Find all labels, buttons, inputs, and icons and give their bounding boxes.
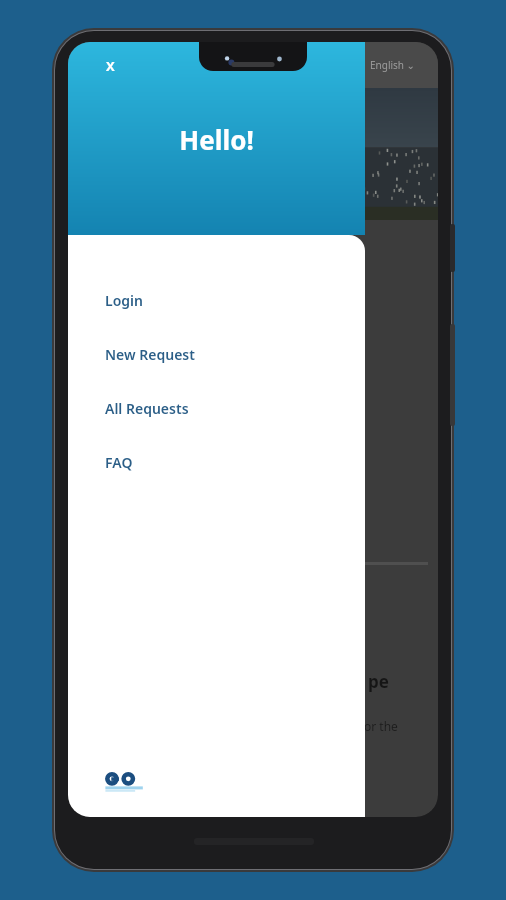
staticText: X (106, 57, 115, 75)
button[interactable]: FAQ (68, 435, 365, 489)
button[interactable]: GO logo (104, 771, 152, 797)
staticText: or the (364, 718, 398, 734)
staticText: Login (105, 291, 143, 310)
staticText: English ⌄ (370, 58, 415, 72)
staticText: All Requests (105, 399, 189, 418)
button[interactable]: Close menu (98, 54, 122, 78)
button[interactable]: Login (68, 273, 365, 327)
staticText: New Request (105, 345, 195, 364)
button[interactable]: All Requests (68, 381, 365, 435)
staticText: Hello! (68, 122, 365, 157)
staticText: FAQ (105, 453, 133, 472)
button[interactable]: New Request (68, 327, 365, 381)
button[interactable]: English ⌄ (368, 56, 417, 74)
staticText: pe (368, 670, 389, 693)
